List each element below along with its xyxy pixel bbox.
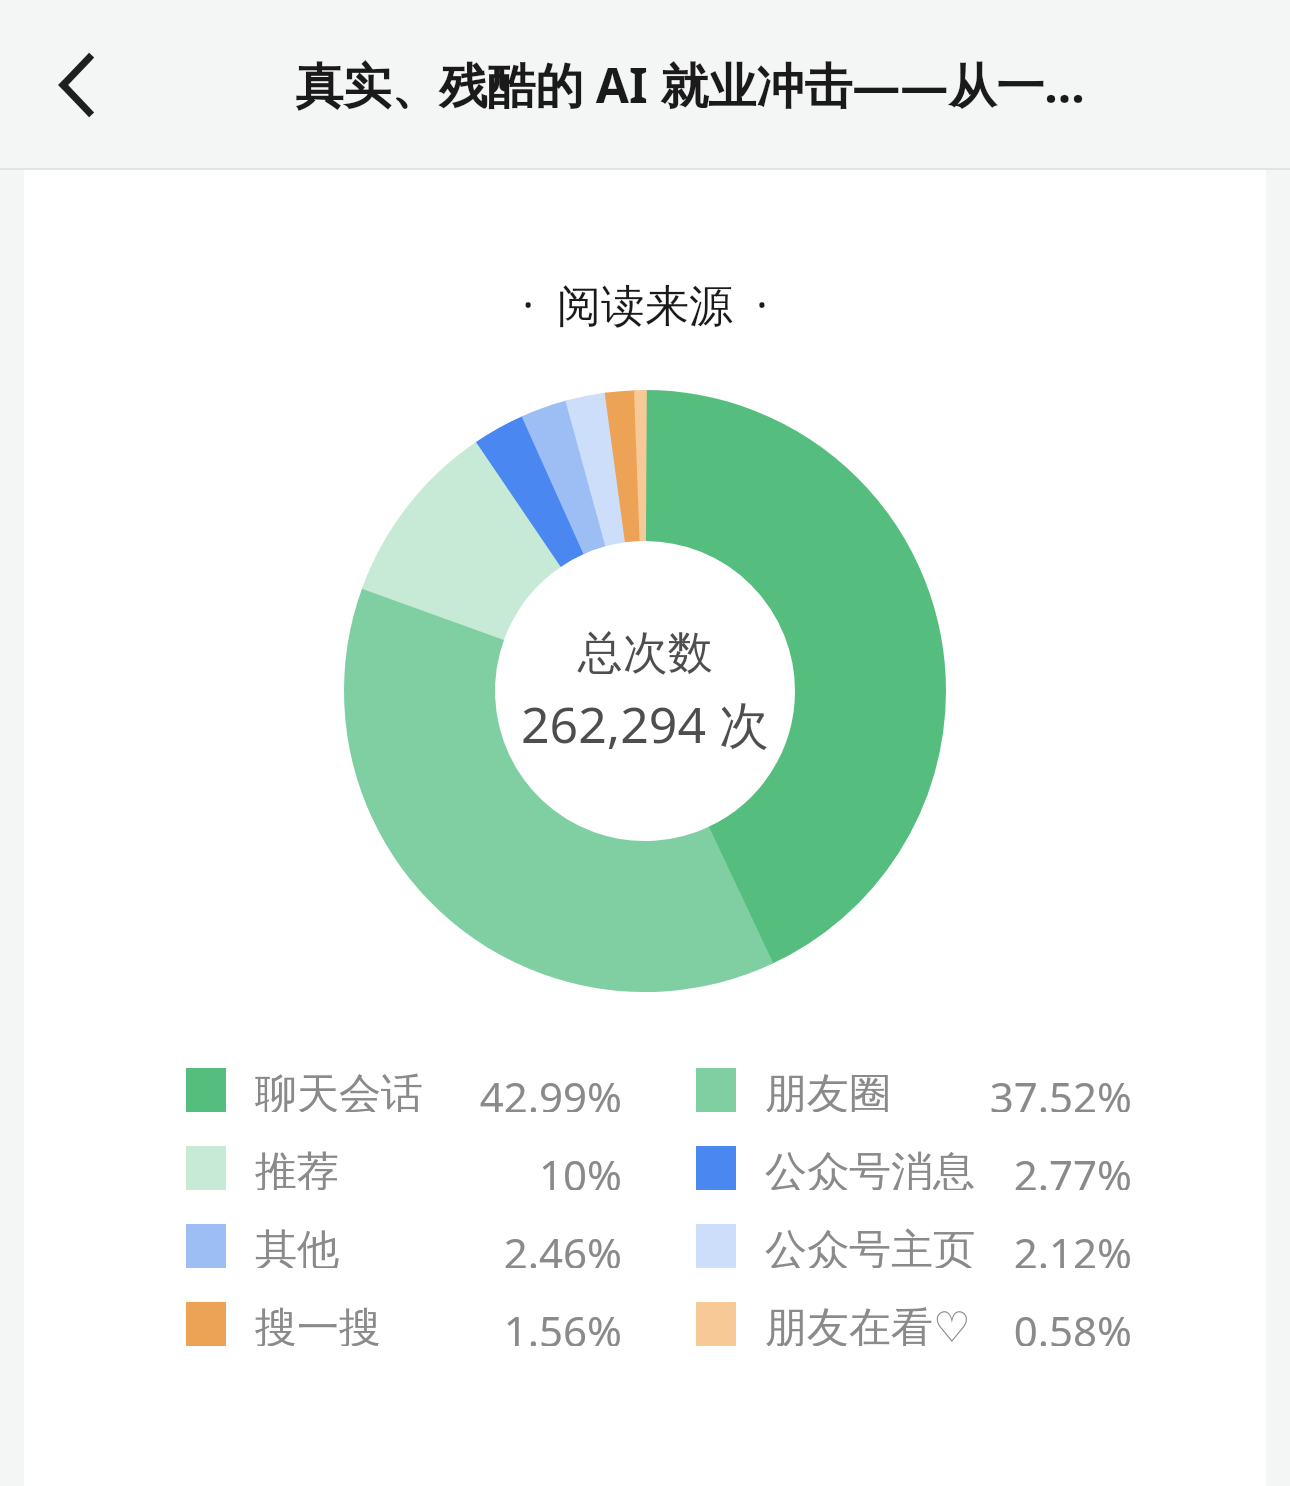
- button[interactable]: 公众号消息: [696, 1146, 1132, 1190]
- staticText: 公众号消息: [765, 1146, 975, 1190]
- button[interactable]: 朋友圈: [696, 1068, 1132, 1112]
- button[interactable]: 朋友在看♡: [696, 1302, 1132, 1346]
- staticText: 推荐: [255, 1146, 339, 1190]
- staticText: 2.77%: [1013, 1146, 1132, 1190]
- button[interactable]: Back: [30, 37, 126, 133]
- staticText: 搜一搜: [255, 1302, 381, 1346]
- staticText: 2.46%: [503, 1224, 622, 1268]
- staticText: 朋友在看♡: [765, 1302, 971, 1346]
- staticText: 37.52%: [989, 1068, 1132, 1112]
- button[interactable]: 其他: [186, 1224, 622, 1268]
- staticText: 公众号主页: [765, 1224, 975, 1268]
- staticText: 其他: [255, 1224, 339, 1268]
- staticText: · 阅读来源 ·: [24, 274, 1266, 334]
- staticText: 2.12%: [1013, 1224, 1132, 1268]
- staticText: 1.56%: [503, 1302, 622, 1346]
- button[interactable]: 公众号主页: [696, 1224, 1132, 1268]
- button[interactable]: 搜一搜: [186, 1302, 622, 1346]
- staticText: 朋友圈: [765, 1068, 891, 1112]
- staticText: 总次数: [578, 625, 713, 682]
- staticText: 0.58%: [1013, 1302, 1132, 1346]
- button[interactable]: 聊天会话: [186, 1068, 622, 1112]
- staticText: 42.99%: [479, 1068, 622, 1112]
- staticText: 10%: [539, 1146, 622, 1190]
- button[interactable]: 推荐: [186, 1146, 622, 1190]
- staticText: 聊天会话: [255, 1068, 423, 1112]
- staticText: 262,294 次: [521, 690, 769, 758]
- staticText: 真实、残酷的 AI 就业冲击——从一...: [295, 52, 1085, 118]
